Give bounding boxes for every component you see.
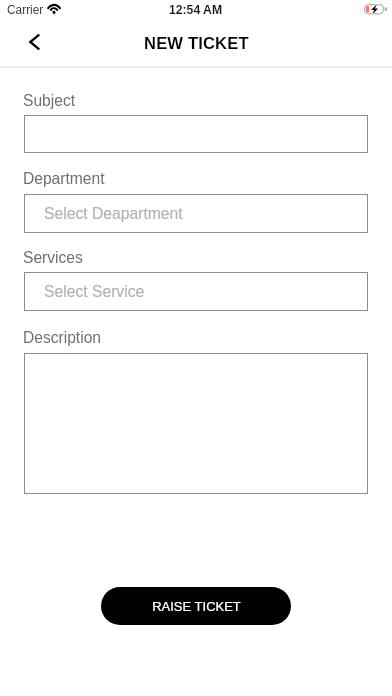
staticText: Services <box>23 249 83 266</box>
button[interactable]: RAISE TICKET <box>101 587 291 625</box>
staticText: Description <box>23 329 101 346</box>
button[interactable] <box>24 353 368 494</box>
staticText: NEW TICKET <box>144 34 249 53</box>
staticText: Subject <box>23 92 76 109</box>
button[interactable]: Select Deapartment <box>24 194 368 233</box>
staticText: Select Deapartment <box>44 205 183 223</box>
button[interactable]: Select Service <box>24 272 368 311</box>
button[interactable]: Back <box>14 25 54 59</box>
staticText: 12:54 AM <box>169 3 223 17</box>
staticText: Select Service <box>44 283 145 301</box>
staticText: Carrier <box>7 3 44 16</box>
staticText: Department <box>23 170 105 187</box>
button[interactable] <box>24 115 368 153</box>
staticText: RAISE TICKET <box>152 599 241 614</box>
